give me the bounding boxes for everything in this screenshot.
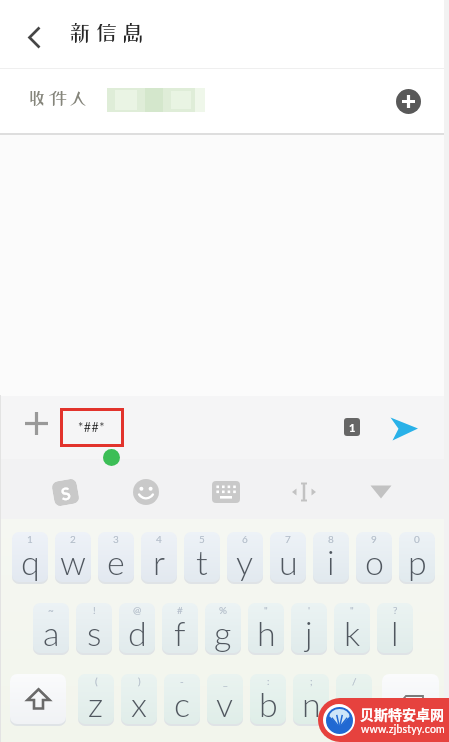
staticText: @: [133, 604, 142, 616]
staticText: -: [180, 675, 184, 687]
button[interactable]: [202, 468, 250, 516]
staticText: 贝斯特安卓网: [360, 704, 444, 724]
button[interactable]: ": [334, 603, 370, 653]
button[interactable]: 3: [98, 532, 134, 582]
button[interactable]: ": [248, 603, 284, 653]
button[interactable]: #: [162, 603, 198, 653]
staticText: 8: [328, 533, 334, 545]
button[interactable]: 9: [356, 532, 392, 582]
button[interactable]: S: [41, 468, 89, 516]
button[interactable]: [389, 416, 420, 442]
staticText: b: [259, 683, 278, 724]
button[interactable]: 2: [55, 532, 91, 582]
button[interactable]: [14, 17, 54, 57]
staticText: d: [128, 612, 147, 653]
staticText: c: [174, 683, 191, 724]
button[interactable]: :: [250, 674, 286, 724]
staticText: ": [350, 604, 354, 616]
staticText: _: [223, 675, 228, 687]
button[interactable]: [10, 674, 66, 724]
staticText: r: [153, 541, 166, 582]
button[interactable]: [357, 468, 405, 516]
staticText: #: [177, 604, 183, 616]
staticText: q: [21, 541, 40, 582]
staticText: ?: [393, 604, 398, 616]
staticText: /: [352, 675, 357, 687]
button[interactable]: 1: [12, 532, 48, 582]
button[interactable]: ): [121, 674, 157, 724]
staticText: p: [408, 541, 427, 582]
staticText: 9: [371, 533, 377, 545]
staticText: 6: [242, 533, 248, 545]
staticText: k: [344, 612, 361, 653]
staticText: www.zjbstyy.com: [361, 723, 445, 736]
staticText: w: [60, 541, 86, 582]
staticText: 新信息: [68, 21, 148, 44]
button[interactable]: ': [291, 603, 327, 653]
staticText: g: [214, 612, 232, 653]
staticText: !: [93, 604, 96, 616]
staticText: l: [391, 612, 399, 653]
staticText: ;: [310, 675, 313, 687]
staticText: j: [305, 612, 313, 653]
staticText: y: [236, 541, 254, 582]
button[interactable]: !: [76, 603, 112, 653]
button[interactable]: [280, 468, 328, 516]
button[interactable]: 5: [184, 532, 220, 582]
staticText: (: [95, 675, 98, 687]
staticText: n: [302, 683, 321, 724]
button[interactable]: ~: [33, 603, 69, 653]
staticText: 2: [70, 533, 76, 545]
button[interactable]: %: [205, 603, 241, 653]
button[interactable]: 收件人: [0, 69, 449, 133]
staticText: 4: [156, 533, 162, 545]
button[interactable]: 6: [227, 532, 263, 582]
button[interactable]: 4: [141, 532, 177, 582]
button[interactable]: *##*: [60, 408, 124, 447]
staticText: e: [107, 541, 125, 582]
staticText: s: [87, 612, 102, 653]
staticText: 0: [414, 533, 420, 545]
button[interactable]: ?: [377, 603, 413, 653]
staticText: x: [131, 683, 147, 724]
staticText: o: [365, 541, 384, 582]
button[interactable]: (: [78, 674, 114, 724]
button[interactable]: -: [164, 674, 200, 724]
staticText: h: [257, 612, 276, 653]
staticText: ": [264, 604, 268, 616]
button[interactable]: [396, 89, 421, 114]
staticText: 1: [349, 421, 356, 434]
staticText: f: [174, 612, 186, 653]
staticText: ~: [48, 604, 54, 616]
staticText: 收件人: [28, 89, 90, 107]
staticText: 3: [113, 533, 119, 545]
button[interactable]: _: [207, 674, 243, 724]
staticText: 1: [27, 533, 33, 545]
staticText: t: [196, 541, 208, 582]
button[interactable]: /: [336, 674, 372, 724]
staticText: u: [279, 541, 298, 582]
staticText: ): [138, 675, 141, 687]
staticText: 7: [285, 533, 291, 545]
button[interactable]: 0: [399, 532, 435, 582]
staticText: i: [327, 541, 335, 582]
button[interactable]: 8: [313, 532, 349, 582]
button[interactable]: @: [119, 603, 155, 653]
staticText: m: [340, 683, 368, 724]
button[interactable]: 7: [270, 532, 306, 582]
staticText: ': [308, 604, 311, 616]
staticText: a: [43, 612, 60, 653]
staticText: z: [88, 683, 104, 724]
button[interactable]: [122, 468, 170, 516]
staticText: S: [59, 482, 73, 504]
button[interactable]: ;: [293, 674, 329, 724]
staticText: *##*: [78, 420, 106, 435]
staticText: :: [267, 675, 270, 687]
staticText: %: [219, 604, 228, 616]
staticText: v: [216, 683, 234, 724]
staticText: 5: [199, 533, 205, 545]
